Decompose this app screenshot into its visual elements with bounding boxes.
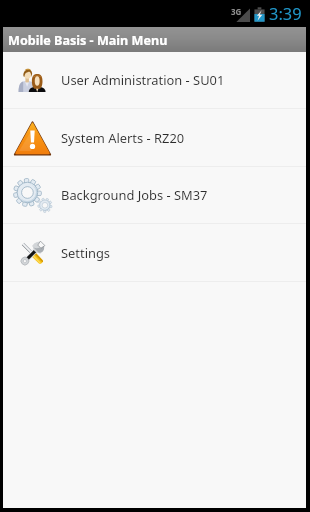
button[interactable]: Background Jobs - SM37 bbox=[3, 167, 306, 224]
staticText: User Administration - SU01 bbox=[61, 71, 225, 89]
button[interactable]: Settings bbox=[3, 224, 306, 282]
button[interactable]: System Alerts - RZ20 bbox=[3, 109, 306, 167]
button[interactable]: User Administration - SU01 bbox=[3, 52, 306, 109]
staticText: 3G bbox=[231, 6, 242, 17]
staticText: 3:39 bbox=[269, 2, 302, 24]
staticText: Background Jobs - SM37 bbox=[61, 186, 208, 204]
staticText: System Alerts - RZ20 bbox=[61, 129, 185, 147]
staticText: Settings bbox=[61, 244, 111, 262]
staticText: Mobile Basis - Main Menu bbox=[8, 32, 168, 49]
